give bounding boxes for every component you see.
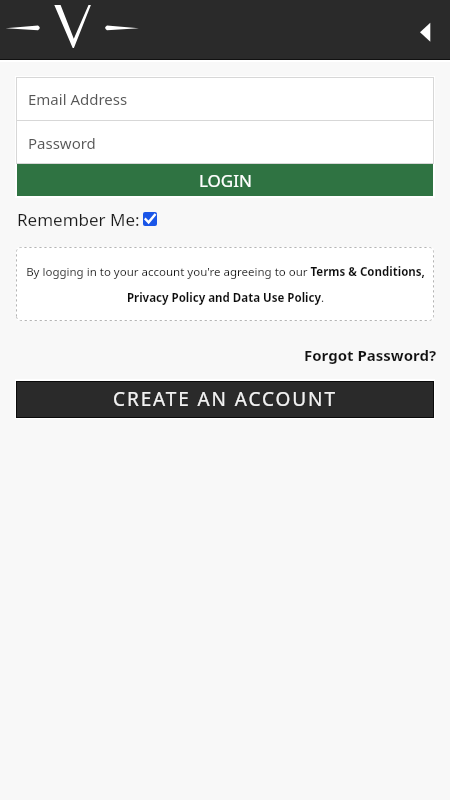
staticText: CREATE AN ACCOUNT [113, 386, 337, 412]
staticText: By logging in to your account you're agr… [26, 264, 425, 305]
button[interactable]: Home logo [0, 2, 145, 62]
staticText: Remember Me: [17, 208, 140, 231]
staticText: Password [28, 133, 96, 153]
button[interactable]: CREATE AN ACCOUNT [16, 381, 434, 418]
button[interactable]: LOGIN [17, 164, 433, 196]
button[interactable]: Forgot Password? [304, 345, 437, 365]
button[interactable]: Password [16, 121, 434, 164]
staticText: Email Address [28, 89, 128, 109]
button[interactable]: Remember Me checkbox [143, 212, 157, 226]
button[interactable]: Back [404, 12, 444, 52]
button[interactable]: Email Address [16, 77, 434, 121]
staticText: LOGIN [199, 169, 252, 192]
